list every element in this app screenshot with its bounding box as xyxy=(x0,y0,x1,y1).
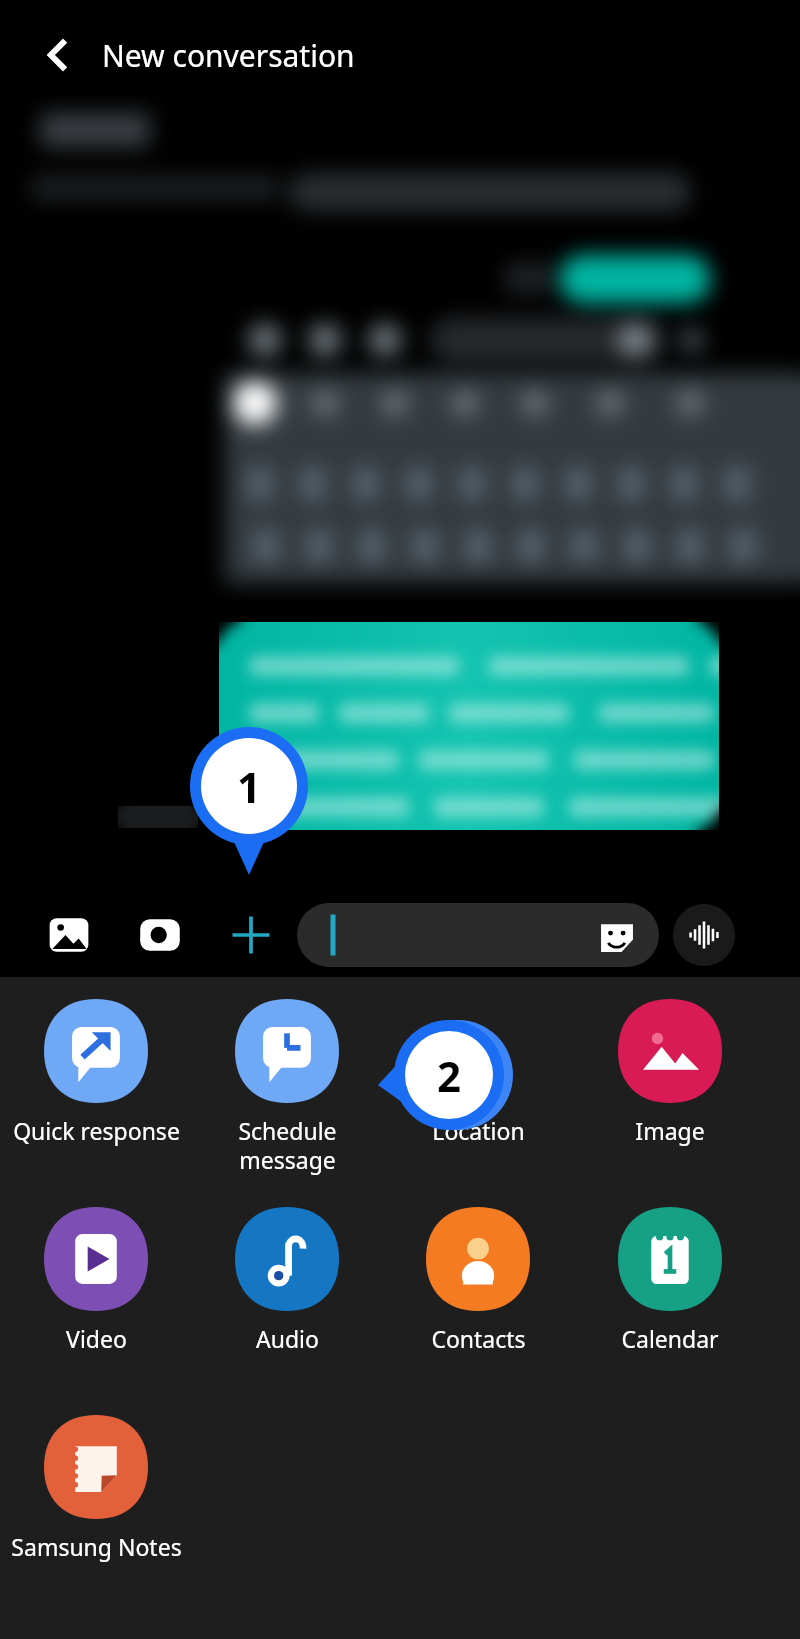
staticText: Contacts xyxy=(431,1323,526,1354)
staticText: Video xyxy=(66,1323,127,1354)
button[interactable]: Location xyxy=(388,999,568,1146)
staticText: Location xyxy=(432,1115,525,1146)
button[interactable]: Quick response xyxy=(6,999,186,1146)
button[interactable]: Schedule message xyxy=(197,999,377,1176)
button[interactable]: Samsung Notes xyxy=(6,1415,186,1562)
staticText: 2 xyxy=(437,1047,462,1104)
staticText: New conversation xyxy=(102,35,355,76)
button[interactable]: Back xyxy=(26,22,92,88)
staticText: Image xyxy=(635,1115,705,1146)
staticText: Samsung Notes xyxy=(11,1531,182,1562)
button[interactable]: Gallery xyxy=(38,904,100,966)
staticText: Calendar xyxy=(621,1323,719,1354)
button[interactable]: Contacts xyxy=(388,1207,568,1354)
button[interactable]: Add attachment xyxy=(220,904,282,966)
button[interactable]: Camera xyxy=(129,904,191,966)
button[interactable]: Audio xyxy=(197,1207,377,1354)
staticText: Audio xyxy=(256,1323,319,1354)
button[interactable]: Stickers xyxy=(297,903,659,967)
button[interactable]: Voice message xyxy=(673,904,735,966)
button[interactable]: Image xyxy=(580,999,760,1146)
staticText: Quick response xyxy=(13,1115,180,1146)
button[interactable]: Calendar xyxy=(580,1207,760,1354)
staticText: 1 xyxy=(237,758,262,815)
staticText: Schedule message xyxy=(238,1115,337,1176)
button[interactable]: Stickers xyxy=(593,911,641,959)
button[interactable]: Video xyxy=(6,1207,186,1354)
